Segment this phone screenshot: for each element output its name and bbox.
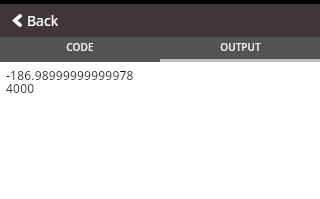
other: Back (13, 14, 22, 27)
staticText: Back (27, 11, 59, 30)
button[interactable]: Back (0, 4, 69, 37)
staticText: -186.98999999999978 4000 (6, 67, 134, 97)
staticText: CODE (66, 40, 94, 54)
button[interactable]: CODE (0, 37, 160, 62)
staticText: OUTPUT (220, 40, 261, 54)
button[interactable]: OUTPUT (160, 37, 320, 62)
